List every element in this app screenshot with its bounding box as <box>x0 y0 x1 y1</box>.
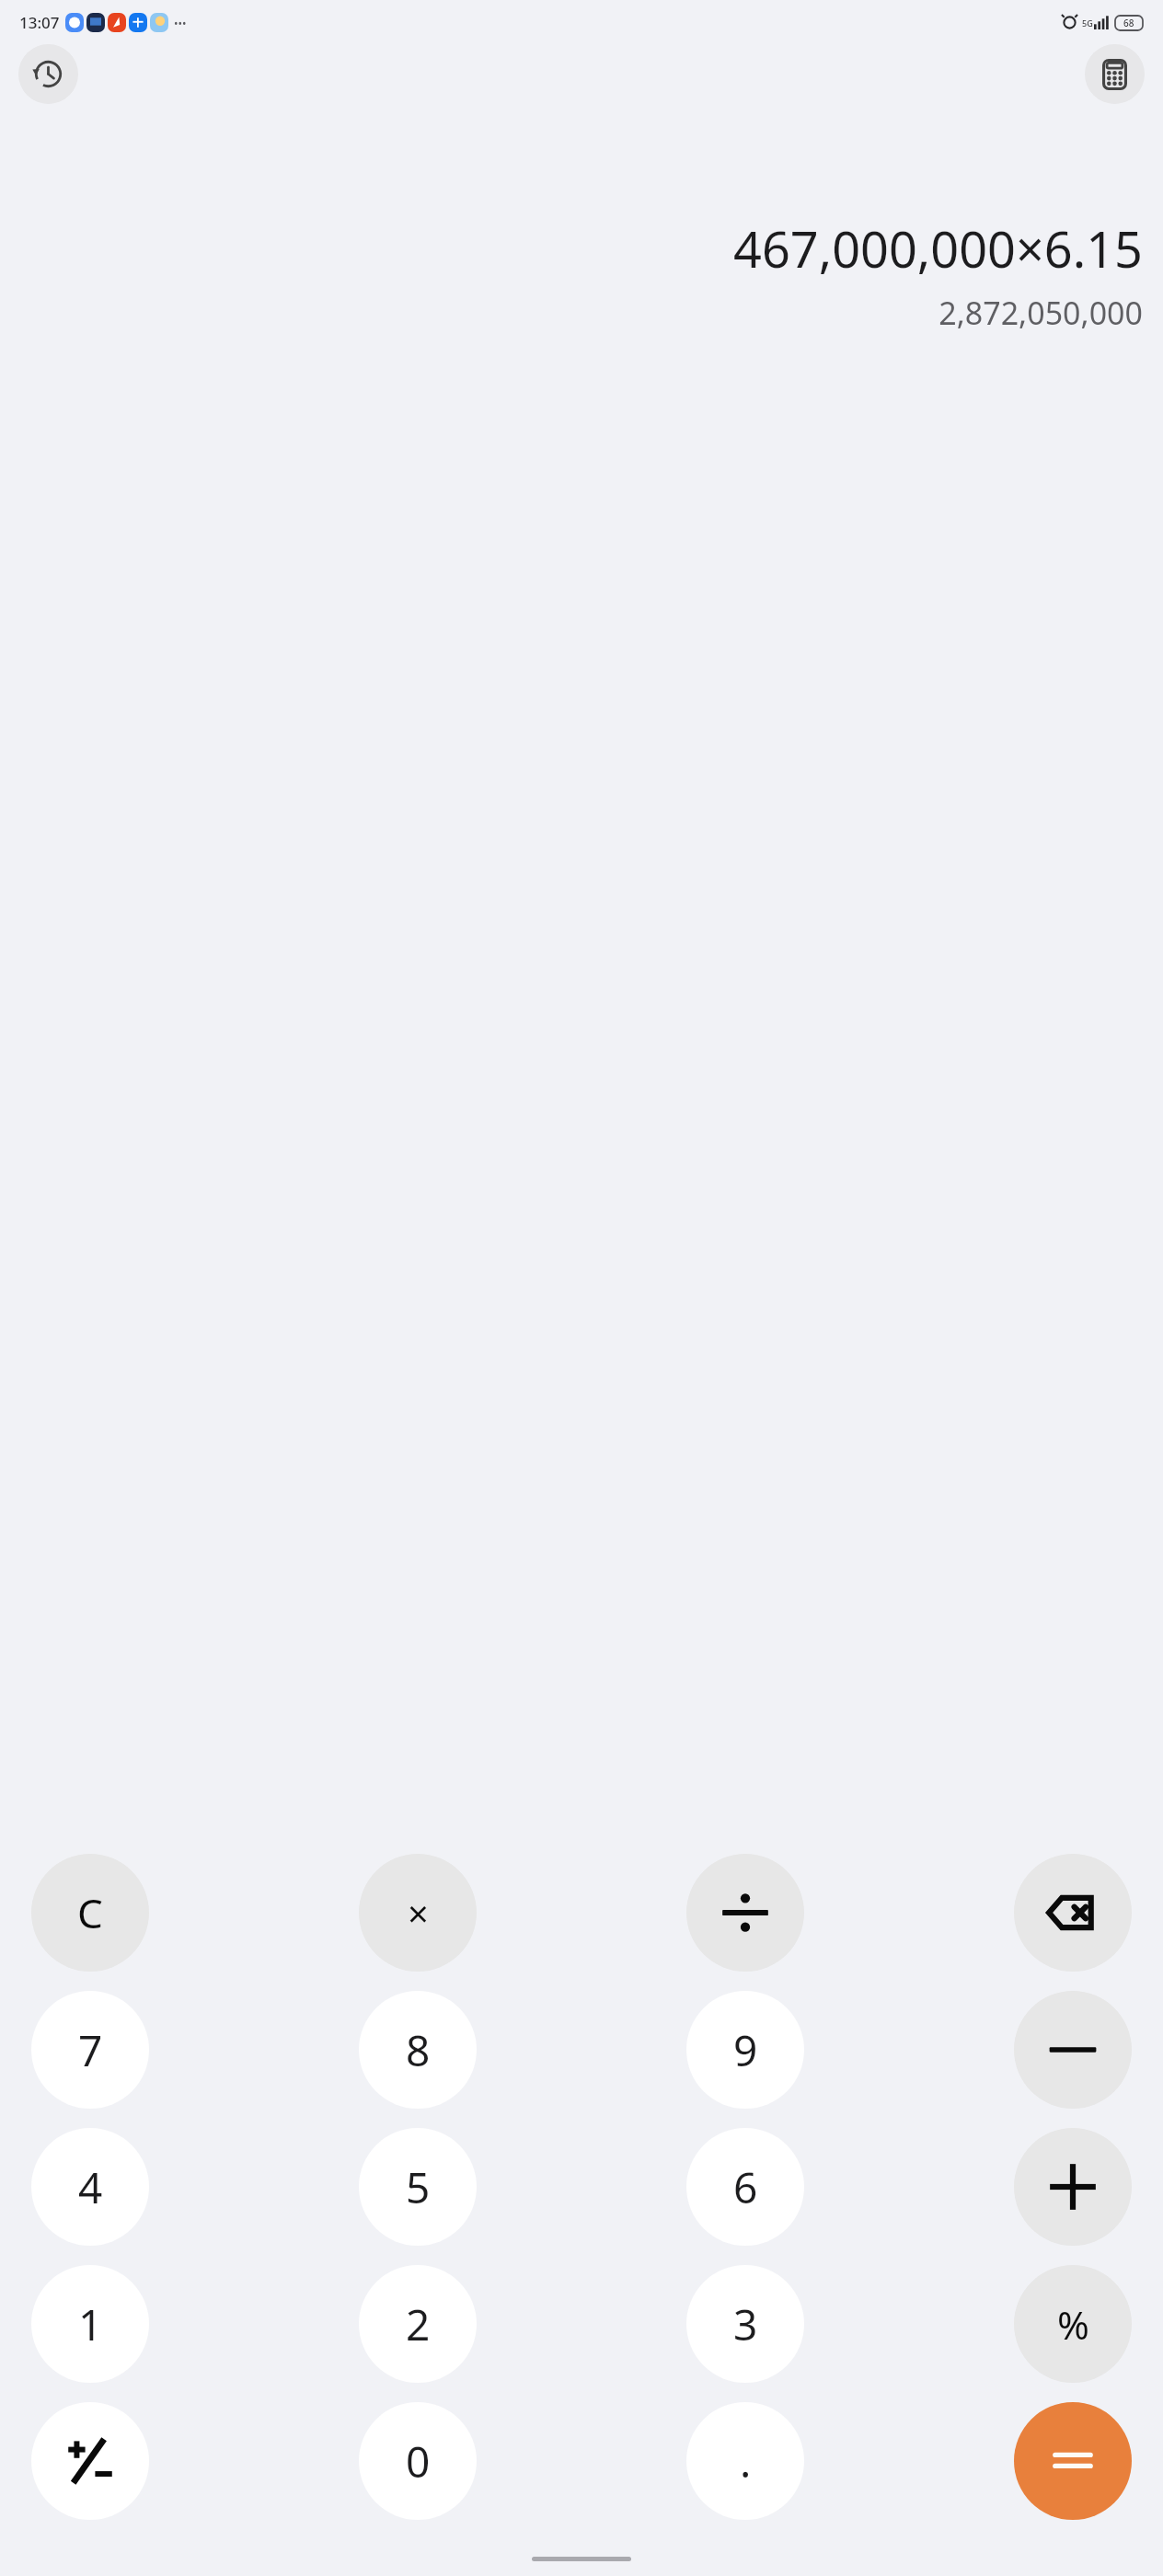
staticText: 6 <box>733 2158 758 2216</box>
staticText: 7 <box>78 2021 103 2079</box>
button[interactable]: C <box>31 1854 149 1972</box>
button[interactable]: % <box>1014 2265 1132 2383</box>
staticText: 68 <box>1123 17 1134 29</box>
staticText: 2 <box>406 2295 431 2353</box>
button[interactable]: Plus <box>1014 2128 1132 2246</box>
button[interactable]: 5 <box>359 2128 477 2246</box>
button[interactable]: 8 <box>359 1991 477 2109</box>
button[interactable]: Backspace <box>1014 1854 1132 1972</box>
staticText: 4 <box>78 2158 103 2216</box>
button[interactable]: Plus minus sign <box>31 2402 149 2520</box>
button[interactable]: Calculator mode <box>1085 44 1145 104</box>
staticText: 3 <box>733 2295 758 2353</box>
staticText: 5G <box>1082 17 1093 29</box>
button[interactable]: 0 <box>359 2402 477 2520</box>
staticText: 467,000,000×6.15 <box>733 214 1143 282</box>
button[interactable]: × <box>359 1854 477 1972</box>
staticText: C <box>77 1885 103 1940</box>
button[interactable]: 1 <box>31 2265 149 2383</box>
button[interactable]: 9 <box>686 1991 804 2109</box>
button[interactable]: 3 <box>686 2265 804 2383</box>
staticText: 8 <box>406 2021 431 2079</box>
button[interactable]: Divide <box>686 1854 804 1972</box>
button[interactable]: 7 <box>31 1991 149 2109</box>
button[interactable]: 2 <box>359 2265 477 2383</box>
button[interactable]: History <box>18 44 78 104</box>
button[interactable]: Equals <box>1014 2402 1132 2520</box>
staticText: × <box>408 1888 429 1938</box>
staticText: % <box>1057 2298 1089 2351</box>
staticText: . <box>740 2432 752 2490</box>
staticText: 9 <box>733 2021 758 2079</box>
button[interactable]: 6 <box>686 2128 804 2246</box>
button[interactable]: 4 <box>31 2128 149 2246</box>
button[interactable]: . <box>686 2402 804 2520</box>
button[interactable]: Minus <box>1014 1991 1132 2109</box>
staticText: 13:07 <box>19 12 60 33</box>
staticText: 0 <box>406 2432 431 2490</box>
staticText: 1 <box>78 2295 103 2353</box>
staticText: 2,872,050,000 <box>938 292 1143 334</box>
staticText: ••• <box>174 16 187 30</box>
staticText: 5 <box>406 2158 431 2216</box>
